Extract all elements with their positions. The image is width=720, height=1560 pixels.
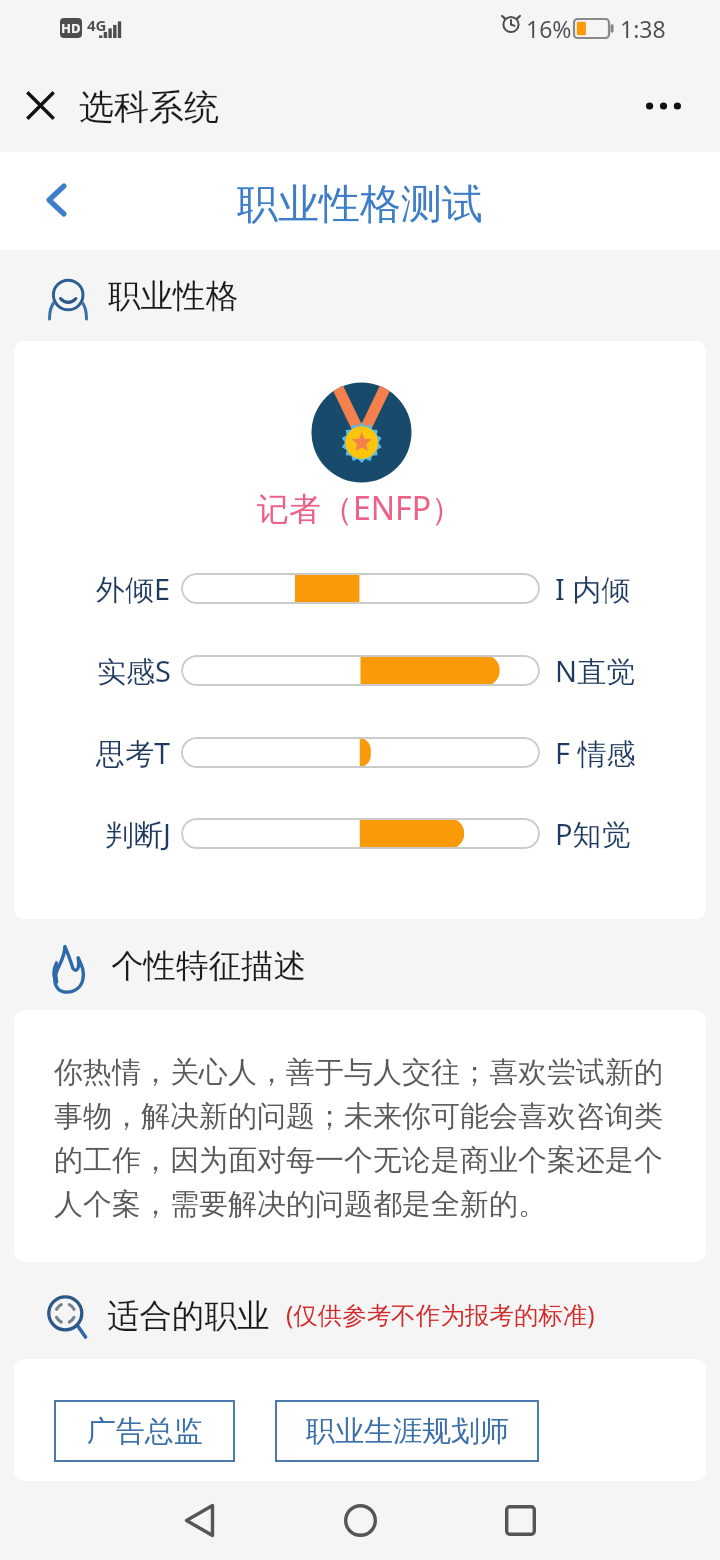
staticText: 1:38 xyxy=(620,13,666,44)
staticText: 职业性格测试 xyxy=(0,179,720,231)
staticText: 实感S xyxy=(97,651,171,691)
staticText: P知觉 xyxy=(555,814,631,854)
staticText: F 情感 xyxy=(555,733,636,773)
staticText: 4G xyxy=(87,15,107,35)
staticText: 广告总监 xyxy=(87,1413,203,1450)
button[interactable]: Home xyxy=(324,1484,396,1556)
staticText: (仅供参考不作为报考的标准) xyxy=(286,1298,595,1331)
staticText: 职业生涯规划师 xyxy=(306,1413,509,1450)
staticText: 你热情，关心人，善于与人交往；喜欢尝试新的事物，解决新的问题；未来你可能会喜欢咨… xyxy=(54,1054,672,1222)
staticText: 个性特征描述 xyxy=(111,946,306,987)
button[interactable]: Back xyxy=(32,176,80,224)
staticText: 选科系统 xyxy=(79,85,219,129)
button[interactable]: 广告总监 xyxy=(54,1400,235,1462)
staticText: 判断J xyxy=(105,814,171,854)
button[interactable]: Close xyxy=(12,77,68,133)
staticText: HD xyxy=(61,19,81,37)
staticText: I 内倾 xyxy=(555,569,631,609)
staticText: 记者（ENFP） xyxy=(14,486,706,530)
staticText: 职业性格 xyxy=(108,276,238,317)
staticText: 思考T xyxy=(96,733,171,773)
staticText: 16% xyxy=(526,13,572,44)
staticText: 外倾E xyxy=(96,569,171,609)
button[interactable]: Back xyxy=(163,1484,235,1556)
button[interactable]: Recent apps xyxy=(484,1484,556,1556)
button[interactable]: 职业生涯规划师 xyxy=(275,1400,539,1462)
staticText: N直觉 xyxy=(555,651,636,691)
button[interactable]: More options xyxy=(635,78,691,134)
staticText: 适合的职业 xyxy=(107,1296,270,1337)
